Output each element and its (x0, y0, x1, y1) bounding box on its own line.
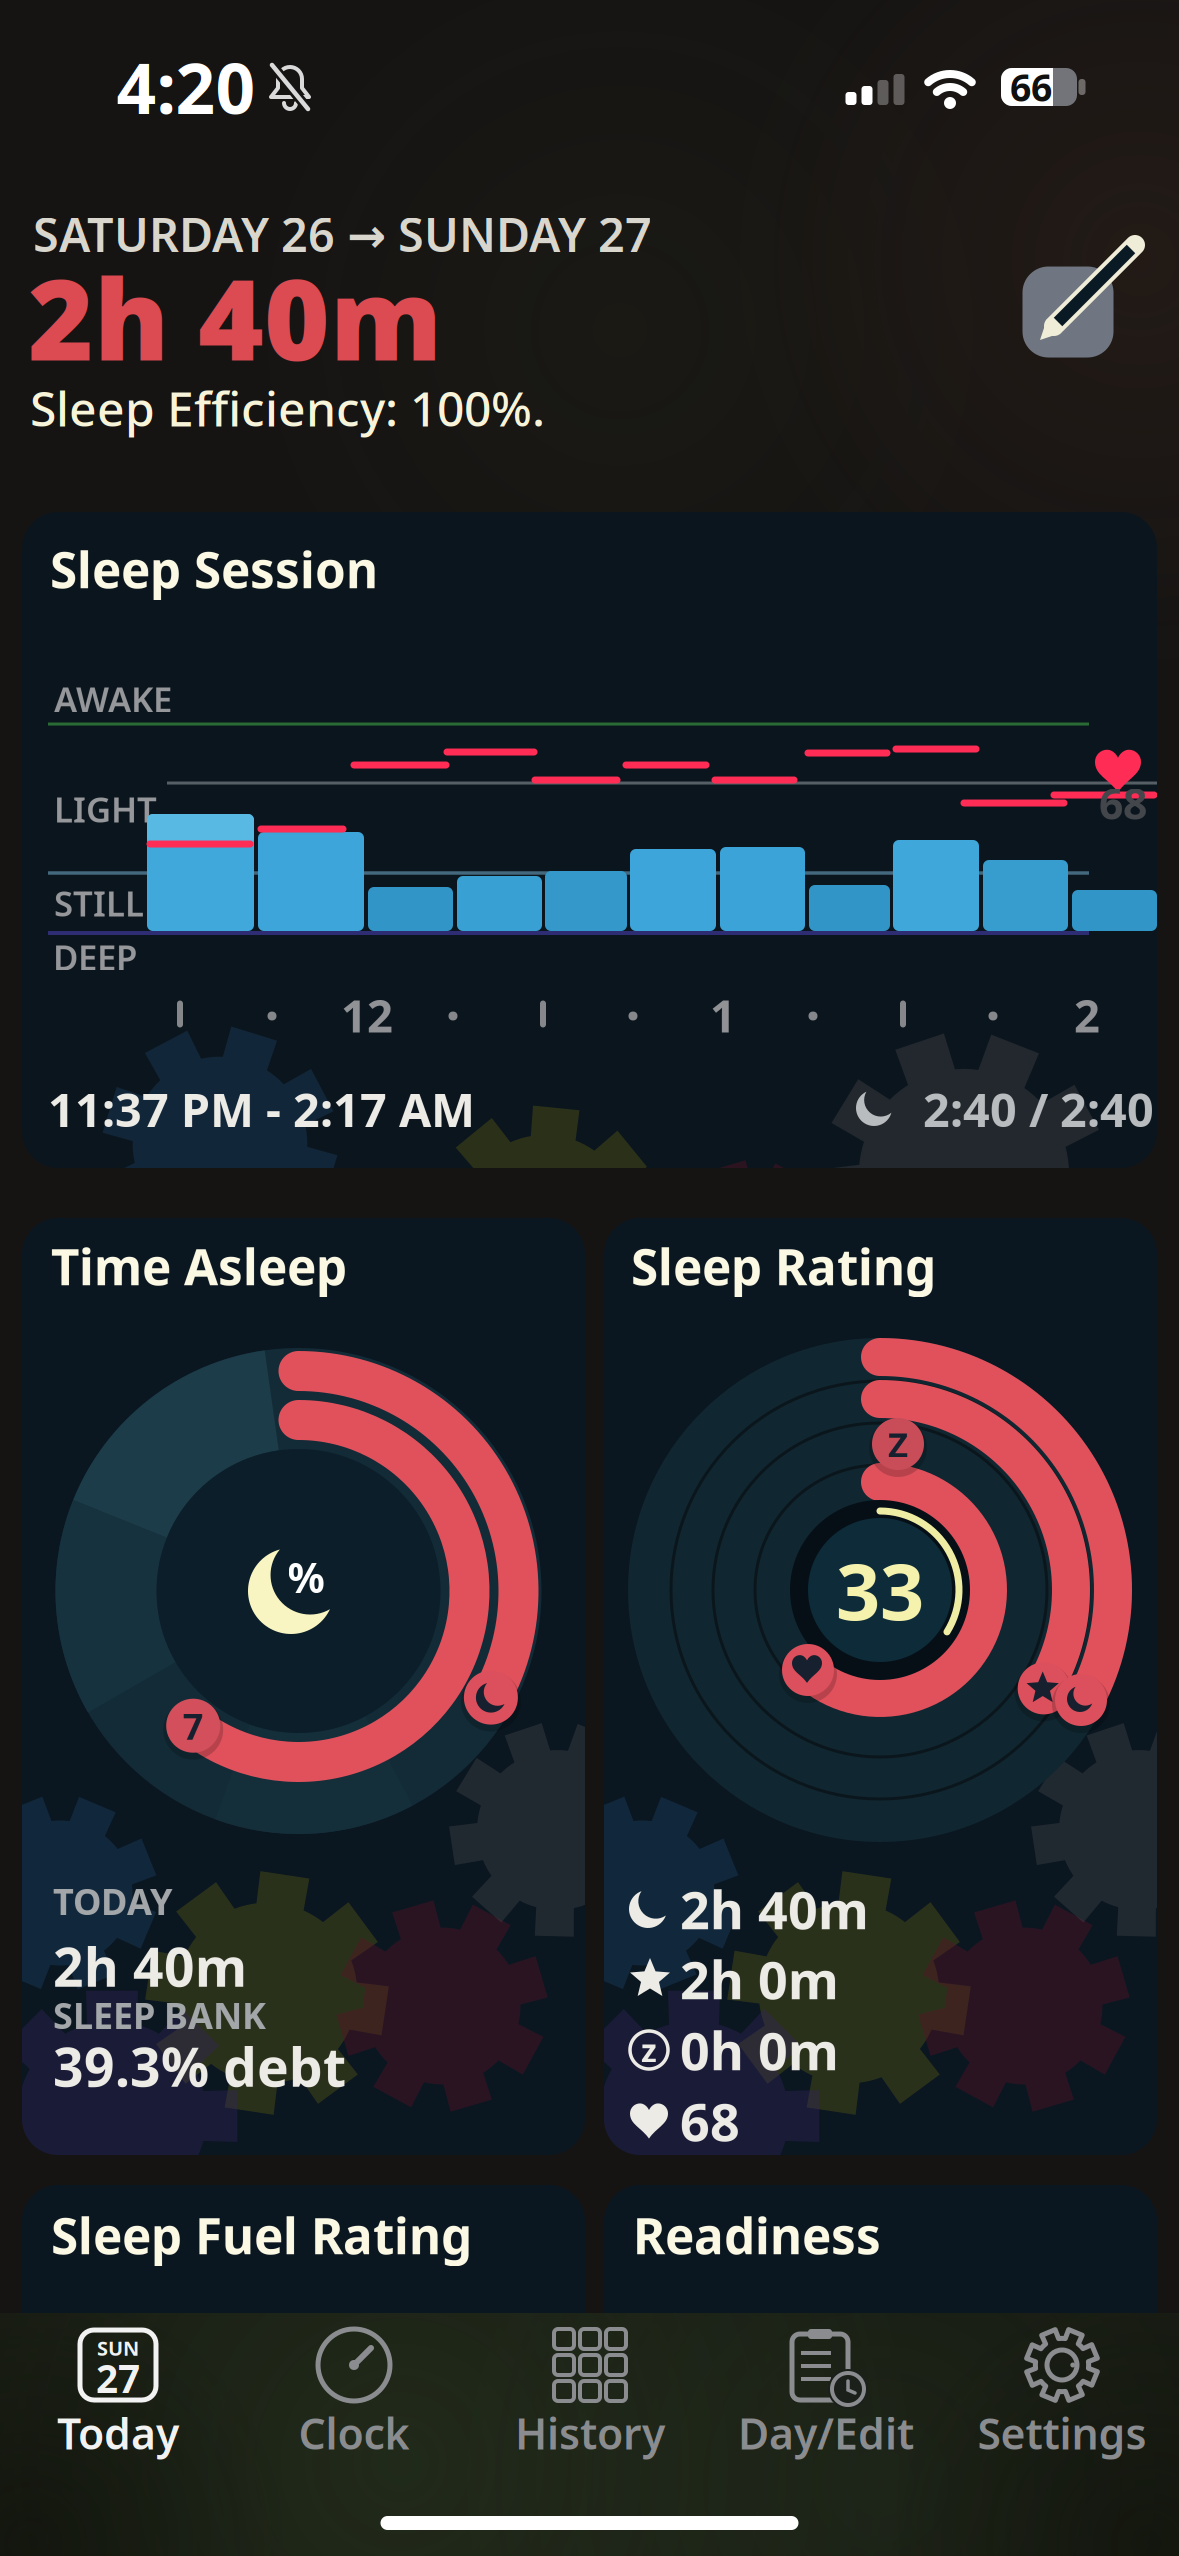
staticText: 1 (710, 985, 736, 1045)
staticText: Sleep Rating (631, 1233, 936, 1299)
staticText: Readiness (633, 2202, 881, 2268)
button[interactable]: Clock (236, 2315, 472, 2475)
staticText: 68 (1099, 775, 1147, 831)
staticText: Day/Edit (738, 2405, 914, 2461)
staticText: 2h 0m (680, 1944, 839, 2014)
staticText: History (515, 2405, 665, 2461)
button[interactable]: Time Asleep (22, 1218, 585, 2155)
staticText: Today (57, 2405, 179, 2461)
button[interactable]: Sleep Rating (604, 1218, 1157, 2155)
staticText: 0h 0m (680, 2015, 839, 2085)
staticText: 7 (183, 1702, 204, 1750)
staticText: Sleep Fuel Rating (51, 2202, 472, 2268)
button[interactable]: Sleep Fuel Rating (22, 2185, 585, 2375)
staticText: DEEP (53, 934, 137, 980)
staticText: 2:40 / 2:40 (923, 1078, 1154, 1140)
staticText: 2 (1074, 985, 1100, 1045)
button[interactable]: SUN (0, 2315, 236, 2475)
staticText: 33 (836, 1539, 924, 1641)
staticText: SLEEP BANK (53, 1991, 266, 2039)
staticText: 27 (96, 2352, 140, 2404)
button[interactable]: Settings (944, 2315, 1179, 2475)
staticText: 2h 40m (28, 243, 442, 391)
staticText: 4:20 (116, 41, 255, 133)
button[interactable]: Day/Edit (708, 2315, 944, 2475)
staticText: Z (888, 1421, 908, 1467)
button[interactable]: Sleep Session (22, 512, 1157, 1168)
staticText: Sleep Session (50, 536, 378, 602)
staticText: LIGHT (54, 786, 157, 832)
staticText: 2h 40m (680, 1874, 869, 1944)
staticText: STILL (54, 880, 144, 926)
staticText: AWAKE (54, 676, 172, 722)
button[interactable]: History (472, 2315, 708, 2475)
button[interactable] (1022, 248, 1142, 368)
staticText: Clock (298, 2405, 409, 2461)
staticText: Time Asleep (51, 1233, 347, 1299)
staticText: % (287, 1550, 324, 1604)
staticText: 12 (341, 985, 393, 1045)
staticText: 2h 40m (53, 1931, 247, 2001)
staticText: SUN (97, 2335, 139, 2361)
staticText: SATURDAY 26 → SUNDAY 27 (33, 203, 652, 265)
staticText: 11:37 PM - 2:17 AM (48, 1078, 475, 1140)
button[interactable]: Readiness (604, 2185, 1157, 2375)
staticText: 66 (1010, 62, 1052, 112)
staticText: Sleep Efficiency: 100%. (30, 376, 545, 440)
staticText: TODAY (53, 1877, 173, 1925)
staticText: 39.3% debt (53, 2031, 346, 2101)
staticText: Settings (977, 2405, 1146, 2461)
staticText: 68 (680, 2086, 740, 2156)
staticText: z (641, 2029, 657, 2071)
